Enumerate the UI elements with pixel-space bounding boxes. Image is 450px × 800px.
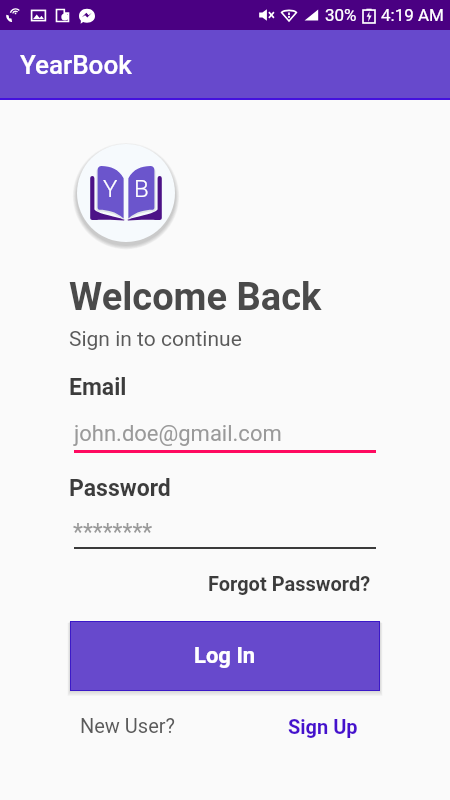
- staticText: Log In: [194, 643, 256, 669]
- staticText: Email: [69, 374, 127, 401]
- staticText: Forgot Password?: [208, 572, 371, 595]
- staticText: ********: [73, 519, 153, 546]
- staticText: B: [134, 175, 149, 203]
- staticText: Welcome Back: [69, 275, 322, 320]
- staticText: Sign Up: [288, 715, 358, 738]
- staticText: YearBook: [20, 50, 132, 80]
- button[interactable]: Forgot Password?: [208, 572, 371, 595]
- staticText: Sign in to continue: [69, 327, 242, 352]
- staticText: 4:19 AM: [381, 5, 444, 25]
- staticText: Y: [103, 175, 118, 203]
- button[interactable]: Log In: [71, 622, 379, 690]
- staticText: john.doe@gmail.com: [74, 421, 282, 447]
- staticText: Password: [69, 475, 171, 502]
- staticText: 30%: [325, 5, 357, 25]
- button[interactable]: Sign Up: [288, 715, 358, 738]
- staticText: New User?: [80, 714, 175, 737]
